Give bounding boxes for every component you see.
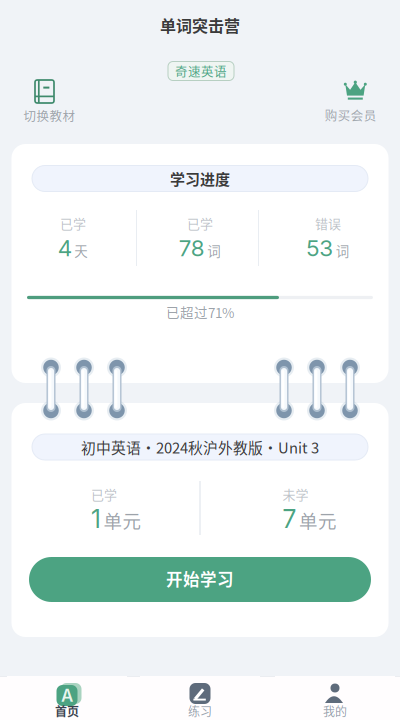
staticText: 4 bbox=[58, 234, 72, 262]
staticText: 已超过71% bbox=[166, 302, 234, 322]
button[interactable]: 练习 bbox=[140, 676, 260, 720]
staticText: 单元 bbox=[299, 507, 337, 534]
staticText: 词 bbox=[207, 241, 221, 260]
staticText: 7 bbox=[282, 504, 296, 534]
staticText: 错误 bbox=[315, 214, 341, 232]
staticText: 开始学习 bbox=[166, 567, 234, 590]
staticText: 奇速英语 bbox=[175, 62, 227, 80]
staticText: 单词突击营 bbox=[160, 13, 240, 37]
staticText: 我的 bbox=[323, 702, 347, 720]
staticText: 首页 bbox=[55, 702, 79, 720]
staticText: 学习进度 bbox=[170, 168, 230, 189]
staticText: 购买会员 bbox=[325, 106, 377, 124]
staticText: 已学 bbox=[60, 214, 86, 232]
staticText: 已学 bbox=[91, 485, 117, 503]
staticText: 天 bbox=[74, 241, 88, 260]
button[interactable]: 购买会员 bbox=[311, 69, 391, 123]
staticText: 词 bbox=[336, 241, 350, 260]
staticText: 单元 bbox=[103, 507, 141, 534]
button[interactable]: A bbox=[7, 676, 127, 720]
staticText: 78 bbox=[179, 234, 205, 262]
staticText: 初中英语·2024秋沪外教版·Unit 3 bbox=[81, 436, 319, 458]
button[interactable]: 切换教材 bbox=[11, 69, 91, 123]
staticText: 1 bbox=[91, 504, 101, 534]
staticText: 练习 bbox=[188, 702, 212, 720]
staticText: A bbox=[61, 685, 73, 706]
button[interactable]: 开始学习 bbox=[29, 557, 371, 602]
button[interactable]: 我的 bbox=[275, 676, 395, 720]
staticText: 未学 bbox=[282, 485, 308, 503]
button[interactable]: 奇速英语 bbox=[168, 61, 234, 80]
staticText: 53 bbox=[306, 234, 333, 262]
staticText: 切换教材 bbox=[24, 106, 76, 125]
staticText: 已学 bbox=[187, 214, 213, 232]
